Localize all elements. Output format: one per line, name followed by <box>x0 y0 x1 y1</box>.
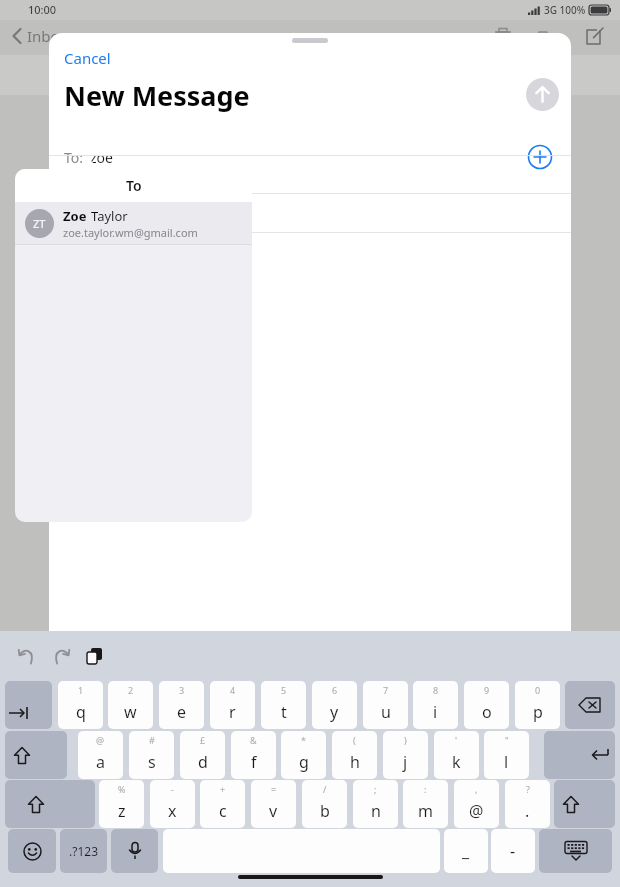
staticText: d <box>198 751 208 773</box>
staticText: n <box>371 800 381 822</box>
staticText: zoe.taylor.wm@gmail.com <box>63 225 198 240</box>
button[interactable]: 5 <box>261 681 306 729</box>
button[interactable]: 6 <box>312 681 357 729</box>
button[interactable]: Cancel <box>55 43 120 73</box>
staticText: o <box>482 701 492 723</box>
staticText: zoe <box>90 148 113 167</box>
button[interactable]: 0 <box>515 681 560 729</box>
staticText: v <box>269 800 278 822</box>
button[interactable]: Delete <box>565 681 615 729</box>
button[interactable]: # <box>129 731 174 779</box>
button[interactable]: ( <box>332 731 377 779</box>
staticText: Zoe <box>63 207 87 225</box>
button[interactable]: * <box>281 731 326 779</box>
button[interactable]: / <box>302 780 347 828</box>
button[interactable]: ? <box>505 780 550 828</box>
button[interactable]: £ <box>180 731 225 779</box>
button[interactable]: Add contact <box>527 144 553 170</box>
button[interactable]: 2 <box>108 681 153 729</box>
button[interactable]: Undo <box>14 643 40 669</box>
button[interactable]: 7 <box>363 681 408 729</box>
staticText: b <box>320 800 330 822</box>
staticText: = <box>271 783 277 795</box>
button[interactable]: 3 <box>159 681 204 729</box>
staticText: To <box>126 176 142 195</box>
staticText: h <box>350 751 360 773</box>
staticText: ' <box>455 734 458 746</box>
button[interactable]: Shift <box>554 780 615 828</box>
staticText: @ <box>96 734 105 746</box>
button[interactable]: Hide keyboard <box>539 829 612 873</box>
button[interactable]: 8 <box>413 681 458 729</box>
staticText: f <box>251 751 257 773</box>
staticText: 8 <box>433 684 439 696</box>
button[interactable]: Dictate <box>111 829 158 873</box>
button[interactable]: .?123 <box>60 829 107 873</box>
button[interactable]: : <box>403 780 448 828</box>
staticText: ? <box>526 783 530 795</box>
button[interactable]: - <box>150 780 195 828</box>
staticText: 2 <box>128 684 134 696</box>
button[interactable]: 9 <box>464 681 509 729</box>
staticText: c <box>219 800 227 822</box>
staticText: New Message <box>64 77 250 114</box>
staticText: * <box>301 734 306 746</box>
staticText: % <box>118 783 126 795</box>
button[interactable]: - <box>491 829 535 873</box>
button[interactable]: Shift <box>5 780 95 828</box>
staticText: t <box>281 701 287 723</box>
staticText: x <box>168 800 177 822</box>
staticText: , <box>475 783 478 795</box>
staticText: 1 <box>78 684 84 696</box>
button[interactable]: Paste <box>82 643 108 669</box>
staticText: 10:00 <box>28 2 57 17</box>
button[interactable]: Redo <box>48 643 74 669</box>
staticText: z <box>118 800 126 822</box>
staticText: m <box>418 800 433 822</box>
button[interactable]: " <box>484 731 529 779</box>
staticText: - <box>171 783 174 795</box>
staticText: u <box>381 701 391 723</box>
staticText: l <box>504 751 509 773</box>
staticText: 3 <box>179 684 185 696</box>
button[interactable]: & <box>231 731 276 779</box>
staticText: @ <box>469 800 484 822</box>
button[interactable]: ; <box>353 780 398 828</box>
button[interactable]: Tab <box>5 681 52 729</box>
staticText: & <box>250 734 257 746</box>
staticText: k <box>452 751 461 773</box>
staticText: j <box>403 751 408 773</box>
button[interactable]: @ <box>78 731 123 779</box>
staticText: _ <box>462 840 470 862</box>
staticText: Cancel <box>64 48 111 68</box>
button[interactable]: = <box>251 780 296 828</box>
staticText: : <box>424 783 427 795</box>
button[interactable]: 1 <box>58 681 103 729</box>
staticText: r <box>229 701 236 723</box>
button[interactable]: Emoji <box>8 829 56 873</box>
button[interactable]: 4 <box>210 681 255 729</box>
staticText: p <box>533 701 543 723</box>
staticText: To: <box>64 148 84 167</box>
staticText: a <box>96 751 105 773</box>
button[interactable]: , <box>454 780 499 828</box>
button[interactable]: ' <box>434 731 479 779</box>
staticText: ( <box>353 734 356 746</box>
staticText: 6 <box>332 684 338 696</box>
button[interactable]: Send <box>526 78 559 111</box>
staticText: g <box>299 751 309 773</box>
staticText: q <box>76 701 86 723</box>
button[interactable]: + <box>200 780 245 828</box>
button[interactable]: % <box>99 780 144 828</box>
staticText: . <box>525 800 530 822</box>
staticText: y <box>330 701 339 723</box>
button[interactable]: ZT <box>15 202 252 244</box>
button[interactable]: _ <box>444 829 488 873</box>
staticText: - <box>510 840 516 862</box>
button[interactable]: ) <box>383 731 428 779</box>
button[interactable]: Shift <box>5 731 67 779</box>
button[interactable]: Return <box>544 731 615 779</box>
staticText: / <box>323 783 327 795</box>
staticText: ZT <box>33 216 46 231</box>
